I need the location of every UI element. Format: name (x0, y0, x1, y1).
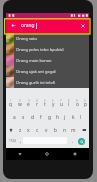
staticText: 3 (28, 99, 30, 103)
button[interactable]: 3 (24, 98, 33, 110)
staticText: b (54, 127, 57, 134)
button[interactable]: m (69, 124, 78, 136)
staticText: Orang gurih ini telofi (16, 80, 56, 85)
button[interactable]: 9 (73, 98, 81, 110)
button[interactable]: Search (78, 138, 85, 145)
button[interactable]: Orang poles tebo bpubisl (6, 44, 89, 55)
staticText: Orang ujak ant gogal (16, 69, 56, 74)
button[interactable]: f (37, 111, 45, 123)
button[interactable]: 4 (33, 98, 41, 110)
staticText: ?123 (9, 139, 16, 143)
button[interactable]: Shift (6, 124, 16, 136)
staticText: x (27, 127, 30, 134)
staticText: 0 (84, 99, 86, 103)
staticText: Orang main bonan (16, 58, 52, 63)
button[interactable]: v (42, 124, 51, 136)
staticText: h (56, 114, 59, 121)
staticText: o (76, 101, 79, 108)
staticText: z (19, 127, 22, 134)
button[interactable]: Back (6, 148, 33, 160)
staticText: g (48, 114, 51, 121)
button[interactable]: Orang satu (6, 33, 89, 44)
button[interactable]: Delete (78, 124, 89, 136)
staticText: 7 (60, 99, 62, 103)
staticText: c (36, 127, 39, 134)
button[interactable]: n (60, 124, 69, 136)
staticText: . (72, 138, 74, 144)
button[interactable]: ?123 (6, 135, 18, 147)
button[interactable]: Orang main bonan (6, 55, 89, 66)
button[interactable]: g (45, 111, 53, 123)
button[interactable]: a (10, 111, 19, 123)
button[interactable]: s (19, 111, 28, 123)
staticText: j (64, 114, 66, 121)
staticText: d (31, 114, 34, 121)
button[interactable]: 0 (81, 98, 89, 110)
staticText: Orang satu (16, 36, 37, 41)
button[interactable]: 7 (57, 98, 65, 110)
button[interactable]: x (24, 124, 33, 136)
button[interactable]: c (33, 124, 42, 136)
staticText: s (22, 114, 25, 121)
button[interactable]: 6 (49, 98, 57, 110)
staticText: r (36, 101, 38, 108)
staticText: 4 (36, 99, 38, 103)
button[interactable]: l (77, 111, 85, 123)
button[interactable]: 1 (6, 98, 15, 110)
staticText: e (27, 101, 30, 108)
staticText: 1 (10, 99, 12, 103)
button[interactable]: Orang ujak ant gogal (6, 66, 89, 77)
staticText: k (72, 114, 75, 121)
button[interactable]: Recent apps (61, 148, 89, 160)
staticText: n (63, 127, 66, 134)
staticText: l (80, 114, 82, 121)
button[interactable]: 5 (41, 98, 49, 110)
button[interactable]: d (28, 111, 37, 123)
staticText: 8 (68, 99, 70, 103)
staticText: 2 (19, 99, 21, 103)
staticText: a (13, 114, 16, 121)
staticText: m (71, 127, 76, 134)
button[interactable]: z (16, 124, 24, 136)
staticText: f (40, 114, 42, 121)
staticText: q (9, 101, 12, 108)
staticText: y (52, 101, 55, 108)
staticText: t (44, 101, 46, 108)
staticText: orang (21, 22, 35, 29)
staticText: i (68, 101, 70, 108)
button[interactable]: Navigate back (6, 18, 21, 33)
button[interactable]: Orang gurih ini telofi (6, 77, 89, 88)
staticText: , (20, 138, 22, 144)
button[interactable]: Comma (18, 135, 23, 147)
staticText: 5 (44, 99, 46, 103)
button[interactable]: h (53, 111, 61, 123)
button[interactable]: Home (33, 148, 61, 160)
button[interactable]: Period (70, 135, 75, 147)
staticText: u (60, 101, 63, 108)
staticText: 9 (76, 99, 78, 103)
staticText: w (18, 101, 22, 108)
button[interactable]: k (69, 111, 77, 123)
staticText: 6 (52, 99, 54, 103)
staticText: Orang poles tebo bpubisl (16, 47, 64, 52)
staticText: p (84, 101, 87, 108)
button[interactable]: 2 (15, 98, 24, 110)
button[interactable]: b (51, 124, 60, 136)
button[interactable]: 8 (65, 98, 73, 110)
staticText: v (45, 127, 48, 134)
button[interactable]: j (61, 111, 69, 123)
button[interactable]: Clear search (77, 18, 89, 33)
